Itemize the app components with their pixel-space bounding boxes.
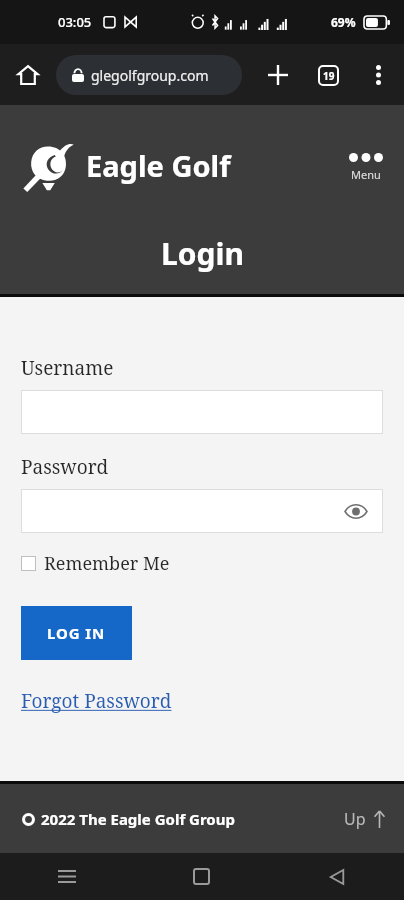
staticText: 69% <box>331 14 356 30</box>
button[interactable]: glegolfgroup.com <box>56 55 242 95</box>
button[interactable]: Username field <box>21 390 383 434</box>
staticText: Menu <box>351 167 381 182</box>
button[interactable]: Recent apps <box>0 853 134 900</box>
staticText: glegolfgroup.com <box>91 66 209 85</box>
button[interactable]: Home <box>10 57 46 93</box>
button[interactable]: Eagle Golf <box>20 137 231 193</box>
staticText: Username <box>21 355 114 381</box>
button[interactable]: Remember Me <box>21 551 170 576</box>
staticText: 19 <box>323 69 335 83</box>
staticText: 03:05 <box>58 13 92 31</box>
button[interactable]: Menu <box>345 149 387 186</box>
button[interactable]: Back <box>269 853 404 900</box>
button[interactable]: Forgot Password <box>21 688 172 714</box>
button[interactable]: More options <box>358 55 398 95</box>
button[interactable]: Up <box>344 808 386 830</box>
button[interactable]: New tab <box>258 55 298 95</box>
staticText: Eagle Golf <box>86 146 231 185</box>
staticText: 2022 The Eagle Golf Group <box>41 809 235 829</box>
button[interactable]: Home <box>134 853 269 900</box>
staticText: Password <box>21 454 109 480</box>
staticText: Up <box>344 808 366 830</box>
button[interactable]: Show password <box>343 498 369 524</box>
staticText: Login <box>161 233 244 274</box>
staticText: LOG IN <box>47 623 106 643</box>
staticText: Remember Me <box>44 551 170 576</box>
button[interactable]: LOG IN <box>21 606 132 660</box>
button[interactable]: Tabs <box>308 55 348 95</box>
button[interactable]: Password field <box>21 489 383 533</box>
